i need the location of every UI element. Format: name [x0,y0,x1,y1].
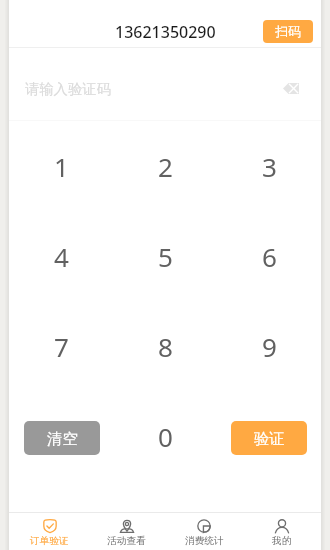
staticText: 验证 [254,429,285,448]
button[interactable]: 扫码 [263,20,313,43]
staticText: 7 [54,329,69,364]
button[interactable]: 5 [113,211,217,301]
staticText: 清空 [47,429,78,448]
staticText: 5 [158,239,173,274]
button[interactable]: 订单验证 [11,513,88,550]
button[interactable]: 4 [9,211,113,301]
button[interactable]: 清空 [24,421,100,455]
staticText: 13621350290 [115,21,216,43]
button[interactable]: 活动查看 [88,513,165,550]
staticText: 2 [158,149,173,184]
button[interactable]: 7 [9,301,113,391]
button[interactable]: 2 [113,121,217,211]
staticText: 0 [158,419,173,454]
button[interactable]: Backspace [278,75,304,101]
button[interactable]: 3 [217,121,321,211]
staticText: 订单验证 [30,535,69,547]
staticText: 我的 [272,535,292,547]
button[interactable]: 0 [113,391,217,481]
button[interactable]: 8 [113,301,217,391]
staticText: 8 [158,329,173,364]
button[interactable]: 我的 [243,513,321,550]
button[interactable]: 验证 [231,421,307,455]
staticText: 6 [262,239,277,274]
staticText: 活动查看 [107,535,146,547]
staticText: 扫码 [275,23,302,40]
staticText: 3 [262,149,277,184]
staticText: 消费统计 [185,535,224,547]
button[interactable]: 1 [9,121,113,211]
staticText: 请输入验证码 [25,80,111,98]
staticText: 9 [262,329,277,364]
button[interactable]: 6 [217,211,321,301]
button[interactable]: 9 [217,301,321,391]
button[interactable]: 消费统计 [165,513,243,550]
staticText: 4 [54,239,69,274]
staticText: 1 [54,149,69,184]
